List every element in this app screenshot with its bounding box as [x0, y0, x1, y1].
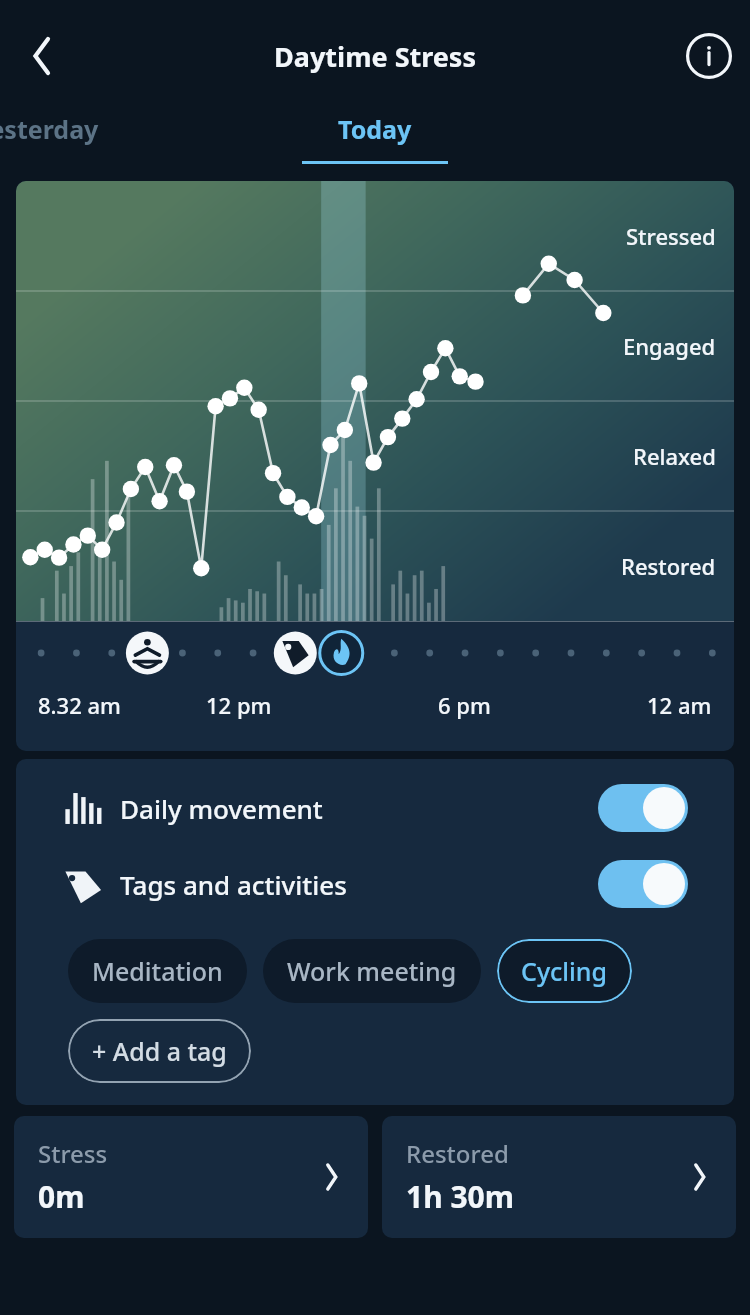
button[interactable]: Meditation [68, 939, 247, 1003]
staticText: Stressed [626, 221, 716, 251]
staticText: Tags and activities [120, 867, 347, 902]
staticText: Engaged [623, 331, 716, 361]
button[interactable]: Stress [14, 1116, 368, 1238]
button[interactable]: + Add a tag [68, 1019, 251, 1083]
staticText: Restored [621, 551, 716, 581]
staticText: Today [338, 112, 412, 146]
staticText: + Add a tag [92, 1034, 227, 1068]
button[interactable]: Back [10, 24, 74, 88]
staticText: Daytime Stress [274, 38, 476, 75]
staticText: Daily movement [120, 791, 323, 826]
staticText: Yesterday [0, 112, 99, 146]
button[interactable]: Work meeting [263, 939, 481, 1003]
staticText: Restored [406, 1137, 509, 1170]
button[interactable]: Tags and activities [16, 853, 734, 915]
staticText: 6 pm [438, 690, 491, 720]
button[interactable]: Daily movement [16, 777, 734, 839]
staticText: 12 pm [206, 690, 272, 720]
button[interactable]: Cycling [497, 939, 632, 1003]
staticText: 8.32 am [38, 690, 121, 720]
staticText: Stress [38, 1137, 108, 1170]
staticText: Cycling [521, 954, 608, 988]
staticText: 12 am [647, 690, 712, 720]
staticText: 1h 30m [406, 1176, 515, 1217]
staticText: 0m [38, 1176, 85, 1217]
staticText: Work meeting [287, 954, 457, 988]
button[interactable]: Information [680, 27, 738, 85]
staticText: Relaxed [633, 441, 716, 471]
button[interactable]: Restored [382, 1116, 736, 1238]
button[interactable]: Today [302, 112, 448, 174]
button[interactable]: Yesterday [0, 112, 112, 174]
staticText: Meditation [92, 954, 223, 988]
